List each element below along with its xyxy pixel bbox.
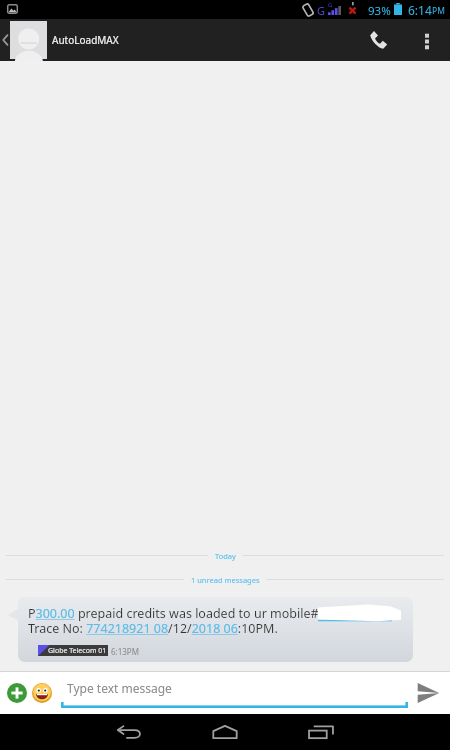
button[interactable]: Recent apps (280, 714, 362, 750)
staticText: 93% (368, 3, 391, 19)
staticText: Trace No: 774218921 08/12/2018 06:10PM. (28, 620, 278, 637)
button[interactable]: Home (184, 714, 266, 750)
other: Back (0, 30, 10, 50)
staticText: P300.00 prepaid credits was loaded to ur… (28, 605, 319, 622)
button[interactable]: Call (353, 19, 403, 61)
staticText: PM (432, 5, 445, 17)
other: Screenshot captured (7, 4, 18, 14)
staticText: Globe Telecom 01 (48, 646, 107, 656)
button[interactable]: Back (89, 714, 170, 750)
staticText: G (317, 3, 326, 18)
staticText: Type text message (67, 680, 172, 696)
staticText: 1 unread messages (191, 575, 260, 585)
button[interactable]: Add attachment (6, 682, 28, 704)
button[interactable]: Send (413, 678, 444, 708)
staticText: G (328, 1, 333, 9)
staticText: 6:13PM (111, 646, 139, 657)
button[interactable]: More options (403, 19, 450, 61)
staticText: AutoLoadMAX (52, 33, 119, 47)
staticText: Today (215, 551, 236, 561)
staticText: 6:14 (408, 2, 432, 18)
button[interactable]: Insert emoji (31, 682, 53, 704)
button[interactable]: P300.00 prepaid credits was loaded to ur… (18, 597, 413, 662)
button[interactable]: Back (0, 21, 47, 59)
